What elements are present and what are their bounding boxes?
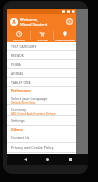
staticText: Contact Us	[11, 135, 30, 140]
button[interactable]: Privacy and Cookie Policy	[7, 143, 76, 153]
button[interactable]: WISH LIST	[7, 29, 30, 42]
button[interactable]: TABLET ONE	[7, 78, 76, 87]
staticText: ADIDAS	[11, 71, 24, 76]
button[interactable]: TEST CATEGORY	[7, 42, 76, 51]
staticText: Default/Store New	[11, 101, 36, 104]
staticText: Mixed Student	[20, 22, 48, 27]
staticText: About us	[11, 155, 27, 160]
staticText: TABLET ONE	[11, 80, 31, 85]
staticText: Privacy and Cookie Policy	[11, 145, 54, 150]
staticText: STORE LOCATOR	[55, 38, 75, 41]
button[interactable]: REEBOK	[7, 51, 76, 60]
staticText: WISH LIST	[13, 38, 25, 41]
staticText: Others	[11, 127, 23, 132]
button[interactable]: Logout	[66, 18, 73, 25]
button[interactable]: Settings	[7, 116, 76, 126]
staticText: REEBOK	[11, 53, 24, 58]
staticText: MY CART	[37, 38, 48, 41]
button[interactable]: About us	[7, 153, 76, 163]
button[interactable]: Home	[43, 155, 52, 164]
button[interactable]: Contact Us	[7, 133, 76, 143]
staticText: PUMA	[11, 62, 21, 67]
button[interactable]: MY CART	[31, 29, 53, 42]
staticText: Currency	[11, 107, 27, 112]
staticText: Welcome,	[20, 17, 39, 22]
button[interactable]: Back	[21, 155, 30, 164]
staticText: Preferences	[11, 88, 32, 93]
button[interactable]: Recents	[66, 155, 75, 164]
button[interactable]: Welcome,	[7, 14, 76, 29]
button[interactable]: PUMA	[7, 60, 76, 69]
button[interactable]: ADIDAS	[7, 69, 76, 78]
button[interactable]: Currency	[7, 105, 76, 116]
button[interactable]: STORE LOCATOR	[54, 29, 76, 42]
staticText: AED United Arab Emirates Dirham	[11, 112, 56, 115]
staticText: TEST CATEGORY	[11, 44, 37, 49]
button[interactable]: Select your Language	[7, 94, 76, 105]
staticText: Settings	[11, 118, 25, 123]
staticText: Select your Language	[11, 96, 48, 101]
